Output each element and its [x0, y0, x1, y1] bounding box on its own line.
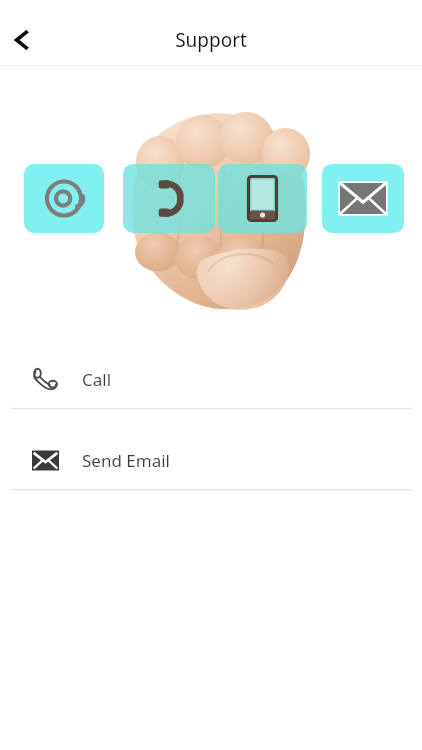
staticText: Send Email	[82, 449, 170, 472]
button[interactable]: Call	[10, 350, 412, 408]
staticText: Support	[0, 27, 422, 53]
button[interactable]: Back	[0, 17, 46, 63]
button[interactable]: Send Email	[10, 431, 412, 489]
staticText: Call	[82, 368, 112, 391]
